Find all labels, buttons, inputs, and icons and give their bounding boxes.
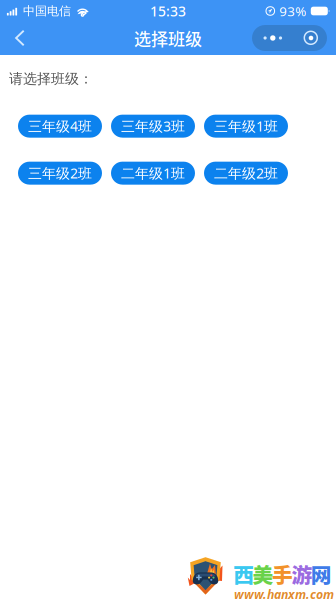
staticText: 93% [279,2,306,20]
staticText: 请选择班级： [9,70,93,88]
staticText: 美 [253,559,274,589]
button[interactable]: 三年级1班 [204,115,288,138]
staticText: 三年级1班 [214,117,278,136]
button[interactable]: 三年级4班 [18,115,102,138]
staticText: 三年级3班 [121,117,185,136]
staticText: 网 [311,559,332,589]
staticText: 手 [272,559,293,589]
staticText: 西 [233,559,254,589]
button[interactable]: 三年级3班 [111,115,195,138]
button[interactable]: 二年级1班 [111,162,195,185]
staticText: 三年级4班 [28,117,92,136]
staticText: 中国电信 [23,3,71,18]
staticText: 游 [291,559,312,589]
staticText: 三年级2班 [28,164,92,183]
button[interactable]: More options [252,25,327,51]
button[interactable]: Back [4,22,36,54]
staticText: www.hanxm.com [234,586,334,600]
button[interactable]: 二年级2班 [204,162,288,185]
staticText: 选择班级 [134,26,202,50]
staticText: 二年级2班 [214,164,278,183]
staticText: 二年级1班 [121,164,185,183]
staticText: 15:33 [150,1,186,21]
button[interactable]: 三年级2班 [18,162,102,185]
